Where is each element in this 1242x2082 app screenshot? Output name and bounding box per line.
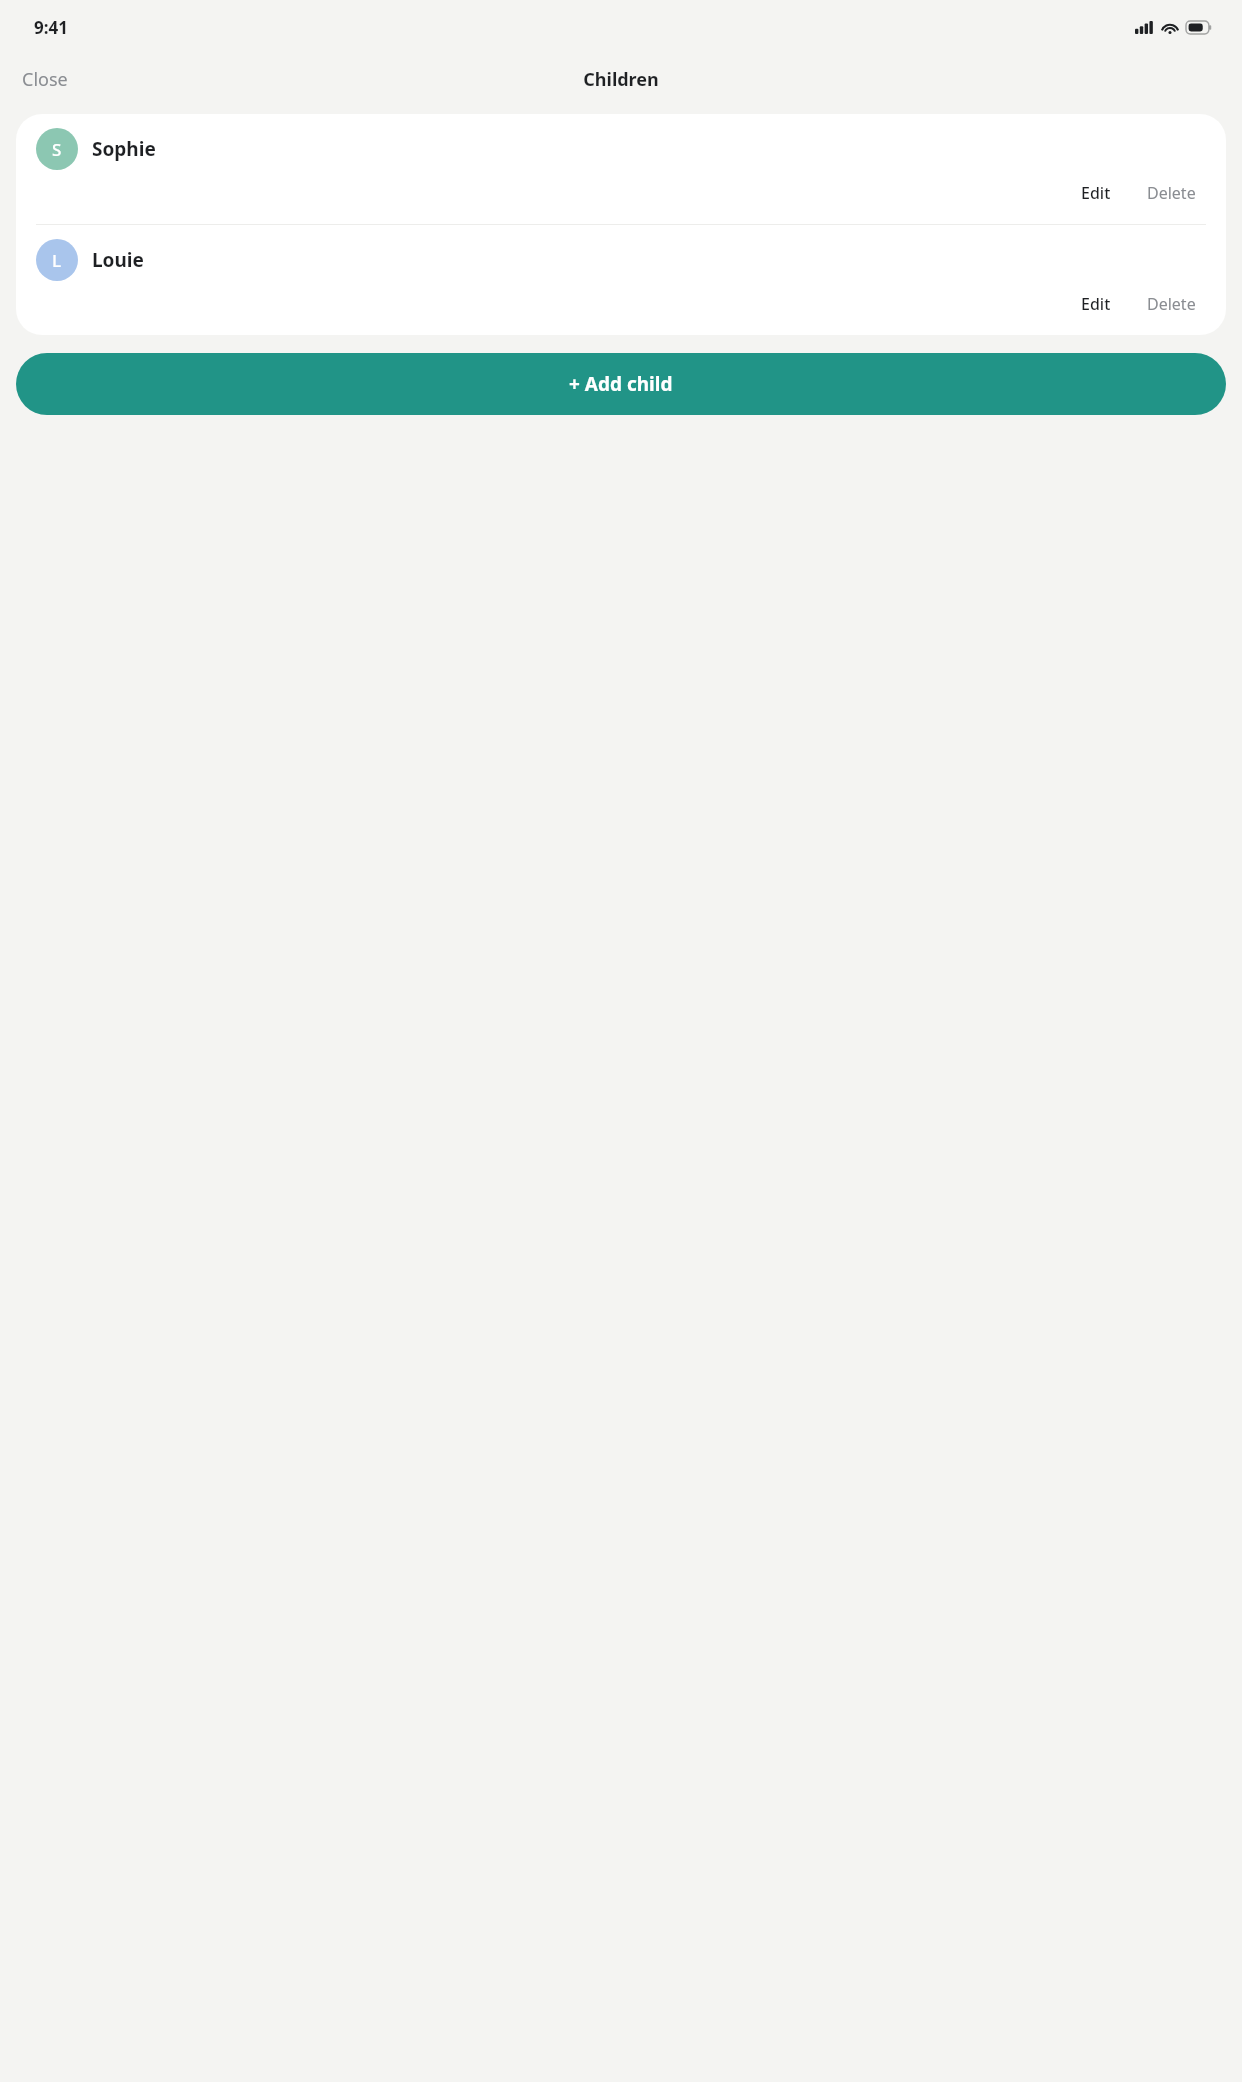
staticText: + Add child	[569, 371, 673, 397]
button[interactable]: + Add child	[16, 353, 1226, 415]
button[interactable]: Edit	[1071, 176, 1121, 210]
button[interactable]: Close	[0, 59, 82, 100]
staticText: Delete	[1147, 293, 1196, 315]
staticText: Children	[583, 67, 659, 92]
button[interactable]: Delete	[1137, 176, 1206, 210]
staticText: Edit	[1081, 182, 1111, 204]
button[interactable]: Delete	[1137, 287, 1206, 321]
staticText: Louie	[92, 247, 144, 273]
button[interactable]: Edit	[1071, 287, 1121, 321]
staticText: Close	[22, 67, 68, 92]
staticText: Edit	[1081, 293, 1111, 315]
staticText: Delete	[1147, 182, 1196, 204]
staticText: L	[52, 249, 62, 272]
staticText: Sophie	[92, 136, 156, 162]
staticText: S	[52, 138, 62, 161]
staticText: 9:41	[34, 16, 68, 39]
